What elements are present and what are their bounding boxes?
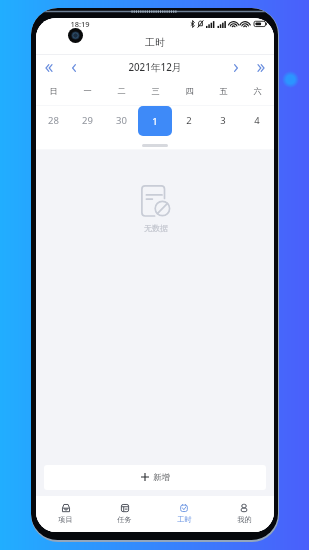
button[interactable]: Previous year bbox=[42, 61, 56, 75]
staticText: 2 bbox=[186, 114, 192, 127]
button[interactable]: 我的 bbox=[214, 496, 274, 532]
staticText: 三 bbox=[151, 86, 160, 96]
staticText: 1 bbox=[152, 115, 158, 128]
staticText: 二 bbox=[117, 86, 126, 96]
staticText: 无数据 bbox=[144, 223, 168, 233]
staticText: 29 bbox=[82, 114, 93, 127]
button[interactable]: 新增 bbox=[44, 465, 266, 490]
button[interactable]: 2 bbox=[172, 105, 206, 136]
staticText: 一 bbox=[83, 86, 92, 96]
staticText: 工时 bbox=[177, 515, 192, 524]
button[interactable]: Next year bbox=[254, 61, 268, 75]
staticText: 工时 bbox=[145, 36, 165, 49]
staticText: 30 bbox=[116, 114, 127, 127]
button[interactable]: 项目 bbox=[36, 496, 95, 532]
staticText: 日 bbox=[49, 86, 58, 96]
button[interactable]: 28 bbox=[36, 105, 70, 136]
button[interactable]: 29 bbox=[70, 105, 104, 136]
button[interactable]: 任务 bbox=[95, 496, 154, 532]
staticText: 3 bbox=[220, 114, 226, 127]
staticText: 六 bbox=[253, 86, 262, 96]
staticText: 4 bbox=[254, 114, 260, 127]
staticText: 18:19 bbox=[70, 19, 90, 29]
button[interactable]: 3 bbox=[206, 105, 240, 136]
button[interactable]: 30 bbox=[104, 105, 138, 136]
button[interactable]: 1 bbox=[138, 106, 172, 136]
button[interactable]: 工时 bbox=[154, 496, 214, 532]
staticText: 28 bbox=[48, 114, 59, 127]
button[interactable]: 4 bbox=[240, 105, 274, 136]
staticText: 项目 bbox=[58, 515, 73, 524]
button[interactable]: Previous month bbox=[67, 61, 81, 75]
staticText: 五 bbox=[219, 86, 228, 96]
button[interactable]: Next month bbox=[229, 61, 243, 75]
staticText: 四 bbox=[185, 86, 194, 96]
staticText: 新增 bbox=[153, 472, 170, 482]
staticText: 2021年12月 bbox=[128, 61, 182, 74]
staticText: 任务 bbox=[117, 515, 132, 524]
staticText: 我的 bbox=[237, 515, 252, 524]
